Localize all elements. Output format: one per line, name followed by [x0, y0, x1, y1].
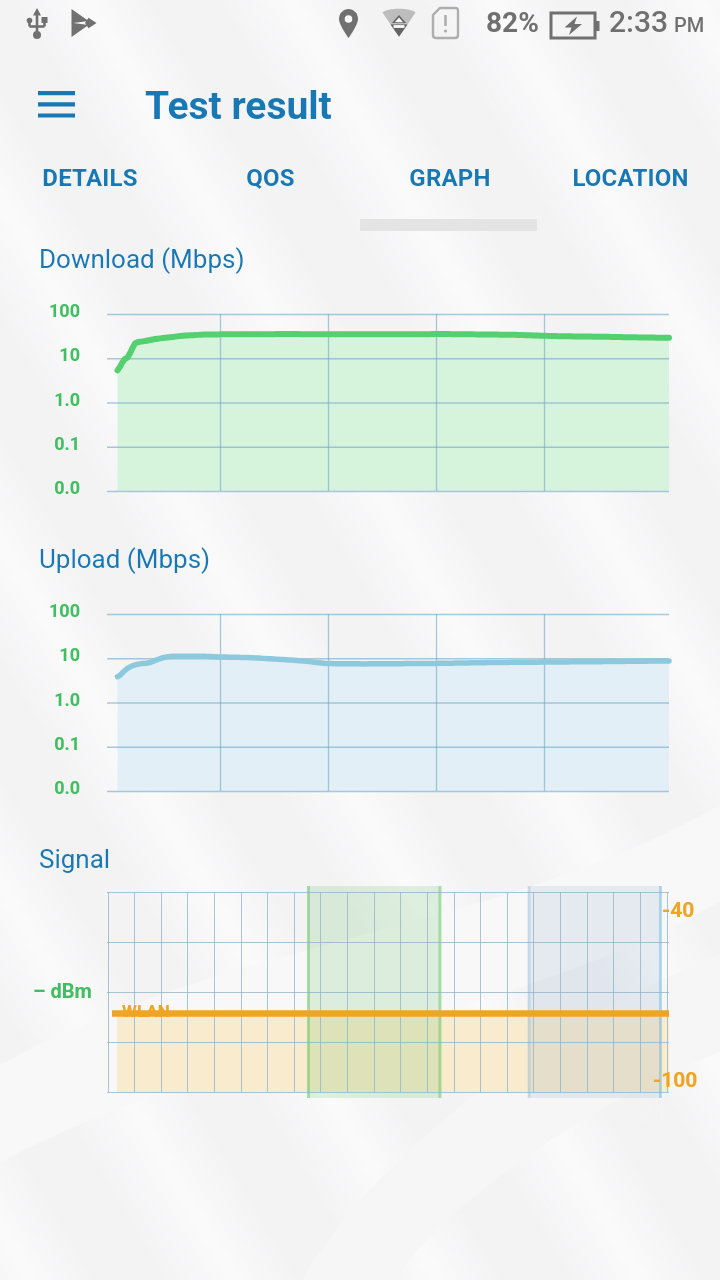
button[interactable]: DETAILS — [0, 150, 180, 206]
staticText: GRAPH — [409, 164, 491, 192]
staticText: DETAILS — [42, 164, 138, 192]
staticText: -40 — [662, 898, 695, 923]
button[interactable]: QOS — [180, 150, 360, 206]
staticText: 82% — [486, 6, 539, 39]
button[interactable]: Open navigation menu — [14, 72, 98, 136]
staticText: Test result — [145, 83, 332, 129]
staticText: -100 — [653, 1068, 698, 1093]
staticText: 10 — [59, 344, 80, 365]
staticText: 0.1 — [54, 433, 80, 454]
button[interactable]: GRAPH — [360, 150, 540, 206]
staticText: 10 — [59, 644, 80, 665]
staticText: 0.0 — [54, 777, 80, 798]
staticText: 1.0 — [54, 389, 80, 410]
staticText: 2:33 — [609, 4, 669, 39]
staticText: 1.0 — [54, 689, 80, 710]
button[interactable]: LOCATION — [540, 150, 720, 206]
staticText: Upload (Mbps) — [39, 544, 211, 574]
staticText: Download (Mbps) — [39, 244, 245, 274]
staticText: PM — [669, 13, 705, 36]
staticText: – dBm — [33, 979, 92, 1002]
staticText: LOCATION — [572, 164, 689, 192]
staticText: 100 — [49, 600, 80, 621]
staticText: 100 — [49, 300, 80, 321]
staticText: WLAN — [122, 1001, 170, 1021]
staticText: Signal — [39, 844, 111, 874]
staticText: 0.0 — [54, 477, 80, 498]
staticText: QOS — [246, 164, 295, 192]
staticText: 0.1 — [54, 733, 80, 754]
